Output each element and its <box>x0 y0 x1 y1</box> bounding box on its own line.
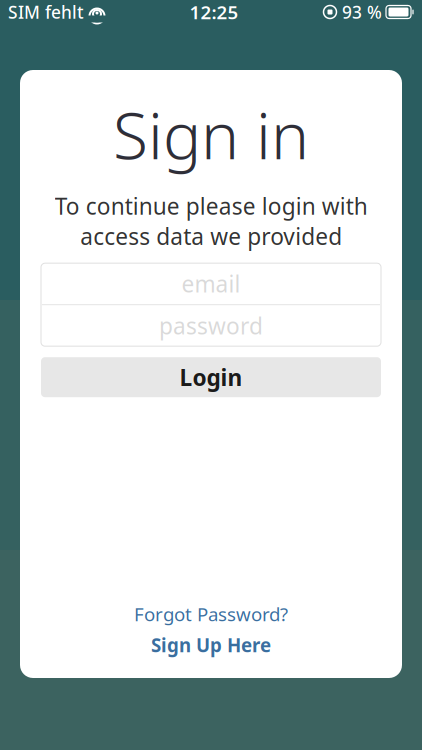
staticText: Login <box>179 362 242 392</box>
button[interactable]: email <box>41 263 381 304</box>
button[interactable]: password <box>41 305 381 346</box>
staticText: SIM fehlt <box>8 0 84 23</box>
staticText: email <box>181 269 240 299</box>
staticText: 12:25 <box>189 0 238 24</box>
staticText: 93 % <box>342 0 382 23</box>
staticText: Sign Up Here <box>151 633 271 657</box>
staticText: Sign in <box>113 92 309 177</box>
button[interactable]: Login <box>41 357 381 397</box>
staticText: To continue please login with access dat… <box>54 191 367 251</box>
button[interactable]: Forgot Password? <box>41 600 381 628</box>
button[interactable]: Sign Up Here <box>41 631 381 659</box>
staticText: Forgot Password? <box>134 602 288 626</box>
staticText: password <box>159 311 263 341</box>
